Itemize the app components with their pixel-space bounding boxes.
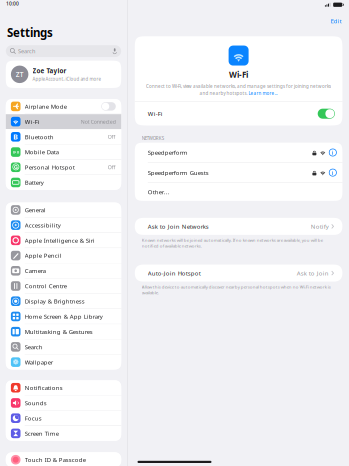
button[interactable]: Ⓖ bbox=[6, 160, 121, 175]
staticText: Not Connected bbox=[81, 118, 116, 125]
button[interactable]: Touch ID & Passcode bbox=[6, 452, 121, 466]
staticText: Focus bbox=[25, 414, 42, 422]
staticText: Apple Pencil bbox=[25, 252, 62, 259]
staticText: Bluetooth bbox=[25, 133, 54, 141]
button[interactable]: Toggle bbox=[101, 102, 116, 111]
staticText: ❁ bbox=[13, 358, 19, 366]
staticText: Zoe Taylor bbox=[33, 67, 67, 75]
button[interactable]: Ask to Join Networks bbox=[135, 218, 342, 235]
button[interactable]: Other... bbox=[135, 183, 342, 201]
staticText: Wi-Fi bbox=[229, 69, 248, 80]
staticText: Sounds bbox=[25, 399, 47, 407]
staticText: Speedperform Guests bbox=[148, 169, 209, 177]
button[interactable]: ZT bbox=[6, 61, 121, 88]
button[interactable]: Search bbox=[6, 45, 121, 57]
staticText: Search bbox=[18, 47, 35, 55]
button[interactable]: Apple Pencil bbox=[6, 248, 121, 263]
staticText: Mobile Data bbox=[25, 148, 59, 156]
staticText: Connect to Wi-Fi, view available network… bbox=[146, 83, 331, 89]
staticText: Off bbox=[108, 133, 116, 140]
staticText: Other... bbox=[148, 188, 170, 196]
staticText: Ask to Join bbox=[297, 269, 329, 277]
staticText: Search bbox=[25, 343, 43, 351]
staticText: General bbox=[25, 206, 46, 214]
staticText: Notifications bbox=[25, 384, 63, 392]
staticText: Wi-Fi bbox=[148, 110, 163, 118]
staticText: Speedperform bbox=[148, 149, 188, 156]
button[interactable]: Camera bbox=[6, 263, 121, 278]
staticText: Accessibility bbox=[25, 221, 61, 229]
button[interactable]: ✦ bbox=[6, 218, 121, 232]
button[interactable]: Speedperform Guests bbox=[135, 163, 342, 182]
button[interactable]: ((•)) bbox=[6, 145, 121, 159]
button[interactable]: Battery bbox=[6, 175, 121, 190]
staticText: and nearby hotspots. bbox=[200, 90, 249, 96]
staticText: Home Screen & App Library bbox=[25, 312, 103, 320]
staticText: Control Centre bbox=[25, 282, 67, 290]
button[interactable]: Auto-Join Hotspot bbox=[135, 265, 342, 282]
button[interactable]: Control Centre bbox=[6, 279, 121, 293]
staticText: 10:00 bbox=[6, 0, 19, 7]
button[interactable]: ❁ bbox=[6, 355, 121, 369]
button[interactable]: Learn more... bbox=[249, 90, 278, 96]
button[interactable]: Search bbox=[6, 339, 121, 354]
staticText: ZT bbox=[16, 70, 24, 79]
button[interactable]: Multitasking & Gestures bbox=[6, 324, 121, 339]
button[interactable]: Wi-Fi bbox=[6, 114, 121, 129]
staticText: Apple Account, iCloud and more bbox=[33, 76, 101, 82]
staticText: ((•)) bbox=[13, 149, 19, 155]
button[interactable]: Display & Brightness bbox=[6, 294, 121, 309]
staticText: Battery bbox=[25, 178, 44, 186]
staticText: Screen Time bbox=[25, 429, 59, 437]
staticText: Ask to Join Networks bbox=[148, 222, 209, 230]
button[interactable]: Focus bbox=[6, 411, 121, 426]
staticText: Multitasking & Gestures bbox=[25, 328, 93, 336]
staticText: Notify bbox=[311, 222, 329, 230]
staticText: Camera bbox=[25, 267, 46, 275]
staticText: Touch ID & Passcode bbox=[25, 456, 86, 464]
staticText: Off bbox=[108, 164, 116, 171]
staticText: Ⓖ bbox=[12, 163, 19, 171]
staticText: Auto-Join Hotspot bbox=[148, 269, 201, 277]
staticText: ✦ bbox=[14, 222, 18, 228]
button[interactable]: B bbox=[6, 129, 121, 144]
staticText: Wi-Fi bbox=[25, 118, 40, 126]
staticText: Display & Brightness bbox=[25, 297, 85, 305]
button[interactable]: Apple Intelligence & Siri bbox=[6, 233, 121, 248]
button[interactable]: Notifications bbox=[6, 380, 121, 395]
staticText: Edit bbox=[330, 17, 341, 25]
staticText: Airplane Mode bbox=[25, 102, 67, 110]
button[interactable]: Sounds bbox=[6, 395, 121, 410]
staticText: Personal Hotspot bbox=[25, 163, 75, 171]
button[interactable]: Airplane Mode bbox=[6, 99, 121, 114]
staticText: NETWORKS bbox=[142, 135, 164, 141]
staticText: B bbox=[13, 132, 18, 142]
staticText: Allow this device to automatically disco… bbox=[142, 284, 331, 295]
button[interactable]: Home Screen & App Library bbox=[6, 309, 121, 324]
staticText: Known networks will be joined automatica… bbox=[142, 237, 323, 249]
staticText: Wallpaper bbox=[25, 358, 53, 366]
staticText: Learn more... bbox=[249, 90, 278, 96]
staticText: i bbox=[332, 169, 334, 177]
staticText: Settings bbox=[7, 25, 53, 40]
button[interactable]: General bbox=[6, 202, 121, 217]
button[interactable]: Toggle bbox=[318, 109, 335, 119]
button[interactable]: Edit bbox=[327, 15, 344, 27]
button[interactable]: Screen Time bbox=[6, 426, 121, 441]
button[interactable]: Speedperform bbox=[135, 143, 342, 162]
staticText: Apple Intelligence & Siri bbox=[25, 236, 95, 244]
staticText: i bbox=[332, 149, 334, 156]
